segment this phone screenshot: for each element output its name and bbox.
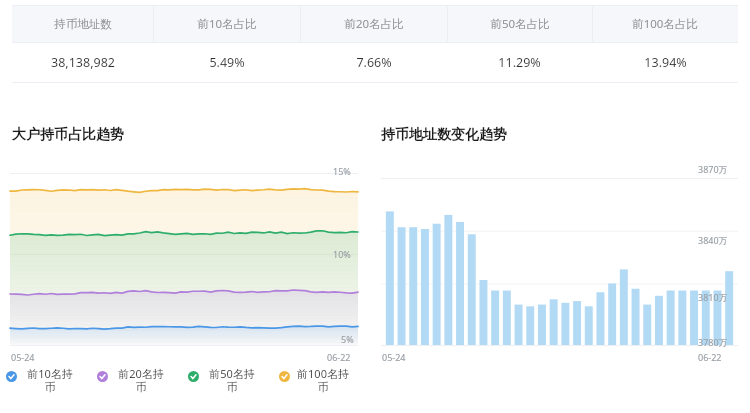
button[interactable]: 前20名占比 [300,5,447,43]
button[interactable]: 前10名占比 [153,5,300,43]
button[interactable]: 前100名持币 [279,366,370,406]
button[interactable]: 5.49% [153,43,300,82]
other: 前50名持币 [188,371,199,382]
staticText: 前10名持币 [22,366,78,394]
staticText: 7.66% [356,54,392,71]
staticText: 3780万 [698,336,728,348]
staticText: 持币地址数 [54,17,112,31]
staticText: 3840万 [698,234,728,246]
button[interactable]: 持币地址数变化趋势 [381,126,507,144]
other: 前10名持币 [6,371,17,382]
staticText: 06-22 [698,351,722,363]
other: 前100名持币 [279,371,290,382]
staticText: 前100名持币 [295,366,351,394]
button[interactable]: 13.94% [592,43,738,82]
staticText: 11.29% [498,54,541,71]
button[interactable]: 7.66% [300,43,447,82]
button[interactable]: 大户持币占比趋势 [12,126,124,144]
staticText: 前20名持币 [113,366,169,394]
button[interactable]: 前10名持币 [6,366,97,406]
staticText: 10% [333,248,351,260]
staticText: 前50名持币 [204,366,260,394]
other: 前20名持币 [97,371,108,382]
button[interactable]: 38,138,982 [12,43,153,82]
staticText: 大户持币占比趋势 [12,126,124,144]
button[interactable]: 前50名持币 [188,366,279,406]
button[interactable]: 前50名占比 [447,5,592,43]
staticText: 15% [333,165,351,177]
staticText: 5.49% [209,54,245,71]
button[interactable]: 前20名持币 [97,366,188,406]
staticText: 05-24 [11,351,35,363]
button[interactable]: 持币地址数 [12,5,153,43]
staticText: 前10名占比 [197,16,257,32]
button[interactable]: 11.29% [447,43,592,82]
staticText: 3870万 [698,163,728,175]
staticText: 05-24 [382,351,406,363]
staticText: 3810万 [698,291,728,303]
staticText: 前20名占比 [344,16,404,32]
staticText: 06-22 [327,351,351,363]
button[interactable]: 前100名占比 [592,5,738,43]
staticText: 38,138,982 [51,54,115,71]
staticText: 13.94% [644,54,687,71]
staticText: 前100名占比 [632,16,698,32]
staticText: 持币地址数变化趋势 [381,126,507,144]
staticText: 5% [341,333,354,345]
staticText: 前50名占比 [490,16,550,32]
